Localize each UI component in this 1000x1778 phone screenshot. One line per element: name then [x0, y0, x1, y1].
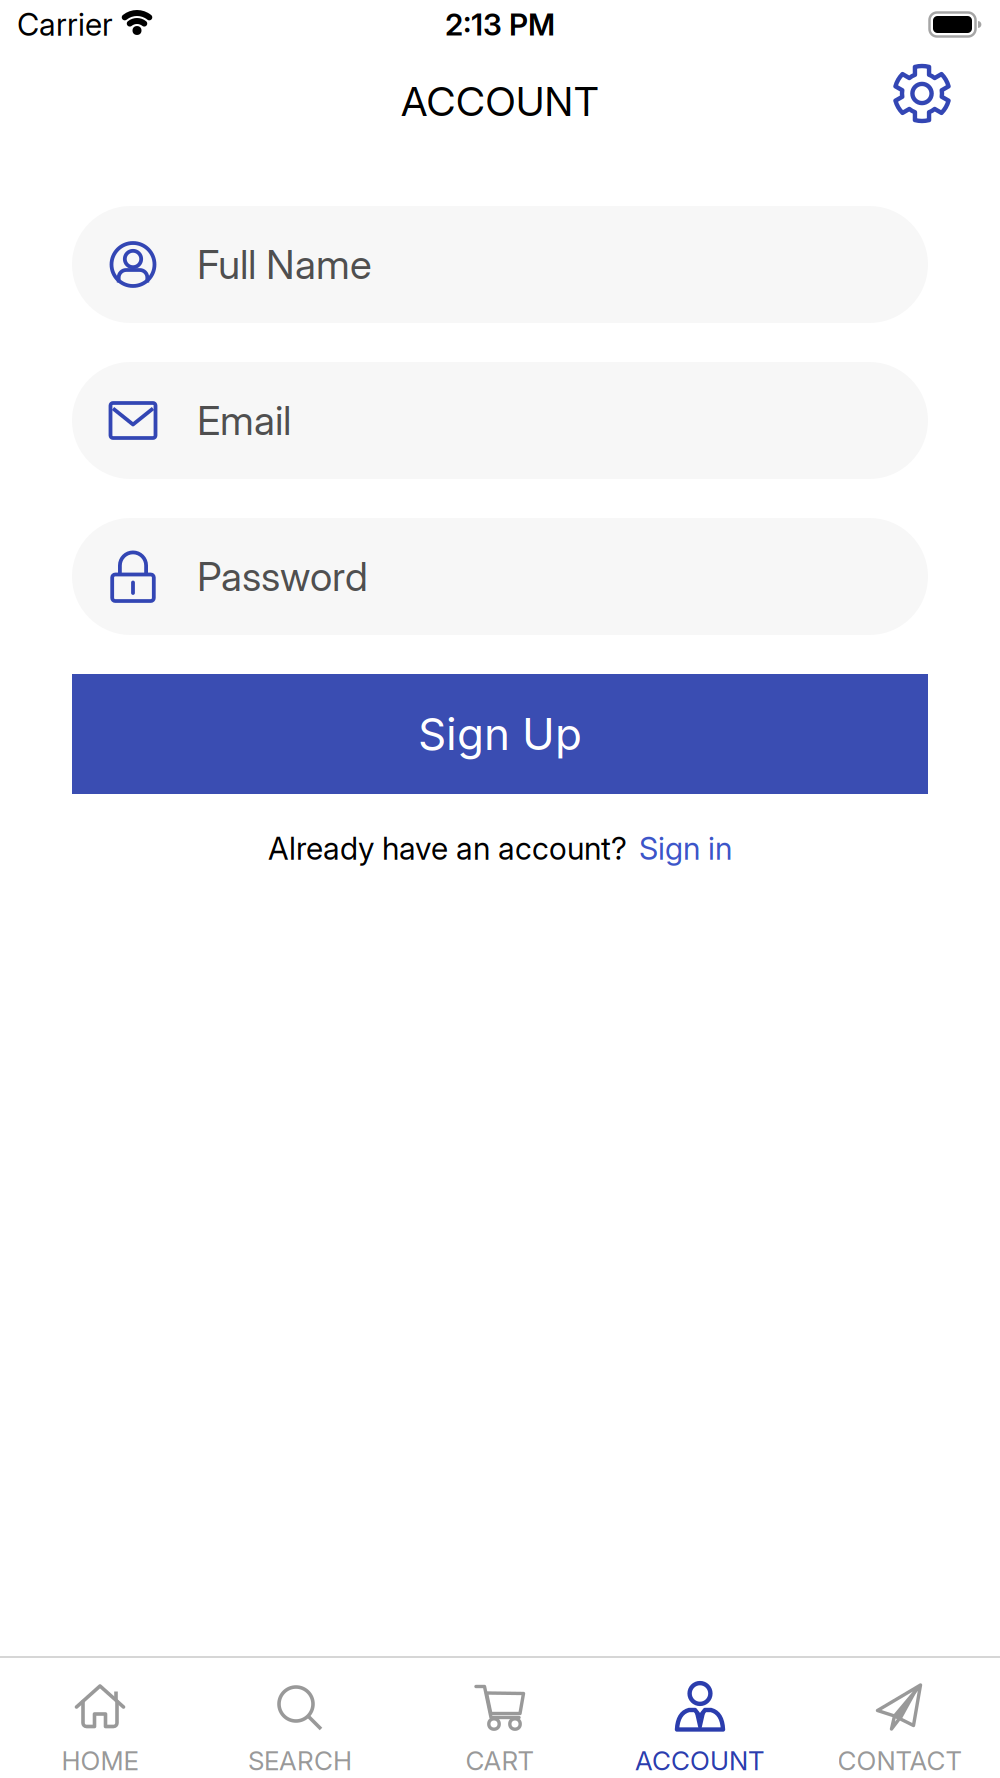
staticText: Sign in [639, 830, 732, 867]
staticText: Carrier [17, 6, 113, 43]
staticText: 2:13 PM [445, 6, 555, 43]
button[interactable]: Sign Up [72, 674, 928, 794]
button[interactable]: CONTACT [800, 1658, 1000, 1776]
button[interactable]: CART [400, 1658, 600, 1776]
staticText: ACCOUNT [635, 1745, 765, 1776]
button[interactable]: Full Name [72, 206, 928, 323]
button[interactable]: SEARCH [200, 1658, 400, 1776]
button[interactable]: Sign in [639, 830, 732, 867]
button[interactable] [892, 63, 1000, 123]
staticText: SEARCH [248, 1745, 352, 1776]
staticText: CONTACT [837, 1745, 962, 1776]
staticText: CART [465, 1745, 534, 1776]
button[interactable]: Password [72, 518, 928, 635]
button[interactable]: HOME [0, 1658, 200, 1776]
staticText: Email [197, 396, 291, 445]
staticText: Full Name [197, 240, 372, 289]
staticText: Already have an account? [268, 830, 627, 867]
staticText: HOME [61, 1745, 138, 1776]
staticText: Password [197, 552, 368, 601]
button[interactable]: ACCOUNT [600, 1658, 800, 1776]
button[interactable]: Email [72, 362, 928, 479]
staticText: Sign Up [418, 707, 582, 761]
staticText: ACCOUNT [401, 77, 599, 126]
